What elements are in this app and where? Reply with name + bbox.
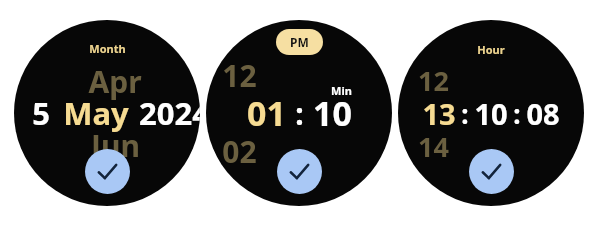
button[interactable]: Confirm selection: [277, 149, 322, 194]
staticText: Month: [89, 41, 126, 56]
staticText: 12: [418, 62, 449, 99]
button[interactable]: May: [63, 92, 129, 134]
staticText: 14: [418, 128, 449, 165]
button[interactable]: 10: [313, 90, 352, 136]
staticText: :: [461, 96, 469, 131]
staticText: PM: [290, 34, 309, 50]
staticText: Jun: [91, 125, 140, 166]
button[interactable]: 5: [32, 92, 50, 134]
staticText: 10: [313, 90, 352, 136]
button[interactable]: PM: [276, 29, 323, 55]
staticText: 08: [526, 94, 560, 133]
button[interactable]: Confirm selection: [85, 149, 130, 194]
staticText: :: [513, 96, 521, 131]
button[interactable]: 01: [247, 90, 286, 136]
staticText: Hour: [477, 42, 505, 57]
button[interactable]: 2024: [139, 92, 200, 134]
button[interactable]: 10: [474, 94, 508, 133]
staticText: :: [295, 93, 304, 134]
staticText: Min: [331, 83, 352, 98]
button[interactable]: 13: [422, 94, 456, 133]
button[interactable]: Confirm selection: [469, 149, 514, 194]
button[interactable]: 08: [526, 94, 560, 133]
staticText: 02: [222, 131, 257, 172]
staticText: 13: [422, 94, 456, 133]
staticText: 01: [247, 90, 286, 136]
staticText: 12: [222, 55, 257, 96]
staticText: 10: [474, 94, 508, 133]
staticText: 5: [32, 92, 50, 134]
staticText: May: [63, 92, 129, 134]
staticText: 2024: [139, 92, 200, 134]
staticText: Apr: [88, 61, 142, 102]
